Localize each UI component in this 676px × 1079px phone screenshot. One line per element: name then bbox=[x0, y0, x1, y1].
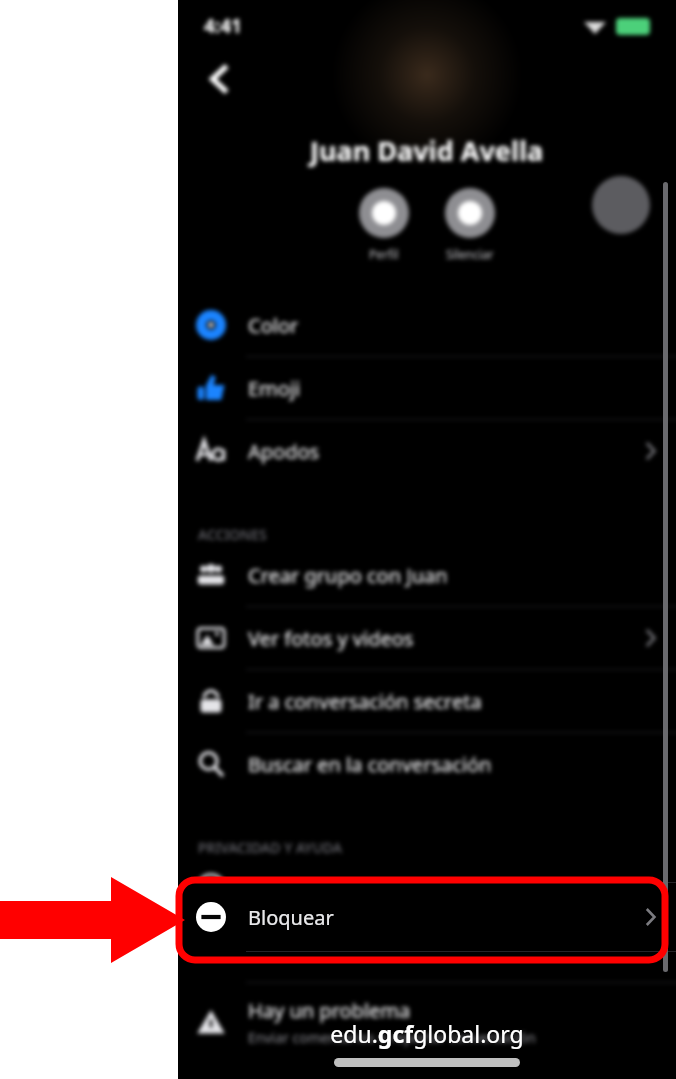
staticText: edu.gcfglobal.org bbox=[330, 1018, 524, 1049]
staticText: Crear grupo con Juan bbox=[248, 562, 448, 589]
staticText: Bloquear bbox=[248, 904, 334, 931]
staticText: Emoji bbox=[248, 375, 301, 402]
staticText: Ver fotos y videos bbox=[248, 625, 414, 652]
staticText: Juan David Avella bbox=[310, 132, 544, 169]
staticText: ACCIONES bbox=[198, 525, 267, 544]
button[interactable]: Ir a conversación secreta bbox=[178, 670, 676, 732]
button[interactable]: Emoji bbox=[178, 357, 676, 419]
staticText: Hay un problema bbox=[248, 997, 411, 1024]
button[interactable]: Back bbox=[194, 52, 248, 106]
button[interactable]: Buscar en la conversación bbox=[178, 733, 676, 795]
button[interactable]: Ignorar mensajes bbox=[178, 857, 676, 919]
staticText: Ir a conversación secreta bbox=[248, 688, 482, 715]
button[interactable]: Hay un problema bbox=[178, 983, 676, 1061]
button[interactable]: Crear grupo con Juan bbox=[178, 544, 676, 606]
staticText: Buscar en la conversación bbox=[248, 751, 492, 778]
staticText: Silenciar bbox=[446, 246, 494, 262]
staticText: PRIVACIDAD Y AYUDA bbox=[198, 838, 342, 857]
button[interactable]: Silenciar bbox=[445, 188, 495, 238]
button[interactable]: Bloquear bbox=[178, 883, 676, 951]
button[interactable]: Ver fotos y videos bbox=[178, 607, 676, 669]
button[interactable]: Perfil bbox=[359, 188, 409, 238]
staticText: 4:41 bbox=[204, 13, 242, 39]
staticText: Color bbox=[248, 312, 299, 339]
staticText: Apodos bbox=[248, 438, 320, 465]
staticText: Enviar comentarios o reportar conversaci… bbox=[248, 1028, 536, 1047]
staticText: Ignorar mensajes bbox=[248, 875, 414, 902]
button[interactable]: Color bbox=[178, 294, 676, 356]
button[interactable]: Apodos bbox=[178, 420, 676, 482]
staticText: Perfil bbox=[369, 246, 399, 262]
